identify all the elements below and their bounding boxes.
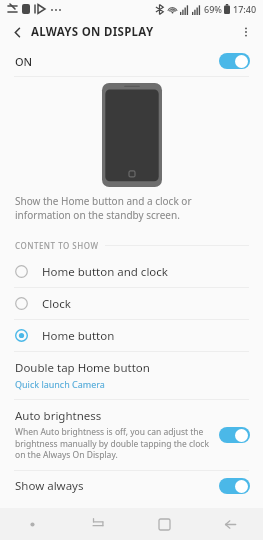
button[interactable]: More options bbox=[235, 21, 257, 43]
staticText: Auto brightness bbox=[15, 408, 102, 424]
button[interactable]: Double tap Home button bbox=[0, 352, 263, 399]
staticText: 17:40 bbox=[233, 3, 257, 15]
staticText: When Auto brightness is off, you can adj… bbox=[15, 426, 211, 461]
staticText: Show the Home button and a clock or info… bbox=[15, 194, 241, 222]
button[interactable]: Keyboard toggle bbox=[0, 508, 65, 540]
staticText: Show always bbox=[15, 478, 84, 494]
staticText: Double tap Home button bbox=[15, 360, 150, 376]
staticText: CONTENT TO SHOW bbox=[15, 240, 99, 251]
staticText: 69% bbox=[204, 3, 222, 15]
button[interactable]: Show always bbox=[0, 471, 263, 501]
button[interactable]: Recents bbox=[131, 508, 197, 540]
button[interactable]: ON bbox=[0, 46, 263, 76]
staticText: Home button bbox=[42, 328, 115, 344]
button[interactable]: Switch bbox=[65, 508, 131, 540]
button[interactable]: Back bbox=[6, 21, 28, 43]
button[interactable]: Home button and clock bbox=[0, 256, 263, 287]
staticText: Quick launch Camera bbox=[15, 378, 105, 390]
button[interactable]: Home button bbox=[0, 320, 263, 351]
staticText: ALWAYS ON DISPLAY bbox=[31, 24, 154, 40]
button[interactable]: Auto brightness bbox=[0, 400, 263, 470]
staticText: Clock bbox=[42, 296, 71, 312]
staticText: ON bbox=[15, 54, 33, 69]
button[interactable]: Clock bbox=[0, 288, 263, 319]
staticText: Home button and clock bbox=[42, 264, 168, 280]
button[interactable]: Back bbox=[197, 508, 263, 540]
